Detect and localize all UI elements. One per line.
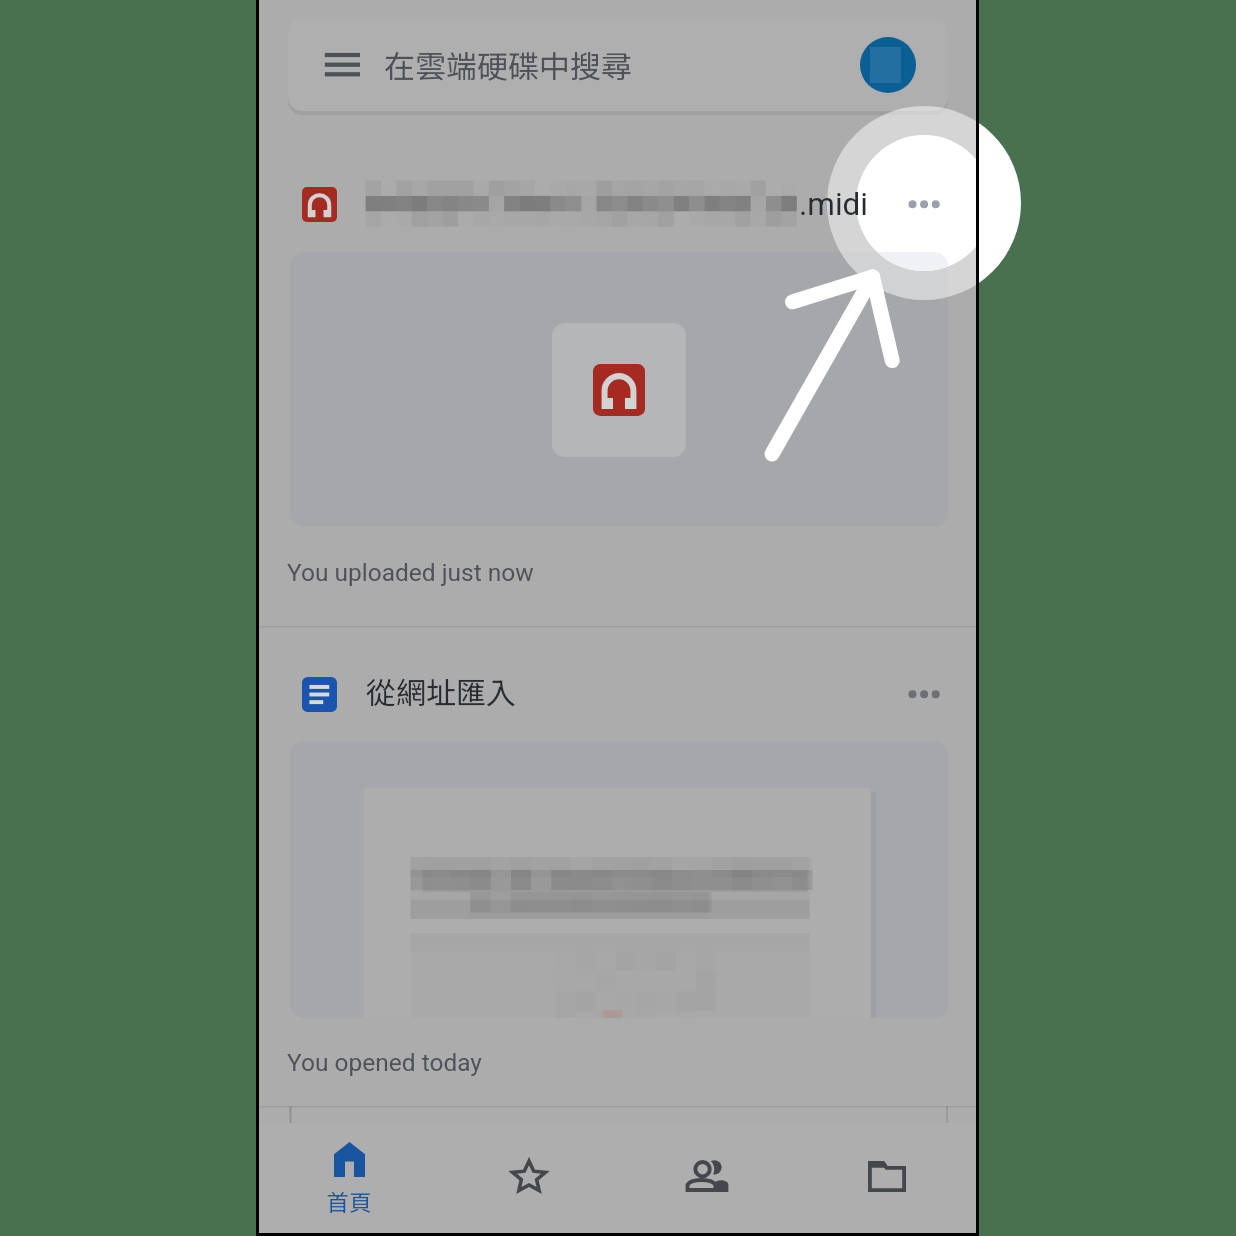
- staticText: You uploaded just now: [287, 558, 534, 587]
- staticText: 從網址匯入: [366, 669, 516, 712]
- staticText: .midi: [799, 186, 869, 223]
- button[interactable]: More options: [900, 180, 948, 228]
- button[interactable]: [290, 741, 948, 1018]
- button[interactable]: More options: [900, 670, 948, 718]
- button[interactable]: Open navigation drawer: [288, 19, 948, 111]
- button[interactable]: Open navigation drawer: [310, 32, 376, 98]
- button[interactable]: 從網址匯入: [259, 650, 976, 740]
- button[interactable]: Starred: [439, 1123, 618, 1233]
- staticText: You opened today: [287, 1048, 482, 1077]
- staticText: 首頁: [326, 1185, 372, 1218]
- button[interactable]: [259, 160, 976, 252]
- button[interactable]: Account: [860, 37, 916, 93]
- button[interactable]: 首頁: [259, 1123, 439, 1233]
- button[interactable]: [290, 252, 948, 527]
- staticText: 在雲端硬碟中搜尋: [384, 42, 632, 87]
- button[interactable]: Shared with me: [618, 1123, 797, 1233]
- button[interactable]: Files: [797, 1123, 976, 1233]
